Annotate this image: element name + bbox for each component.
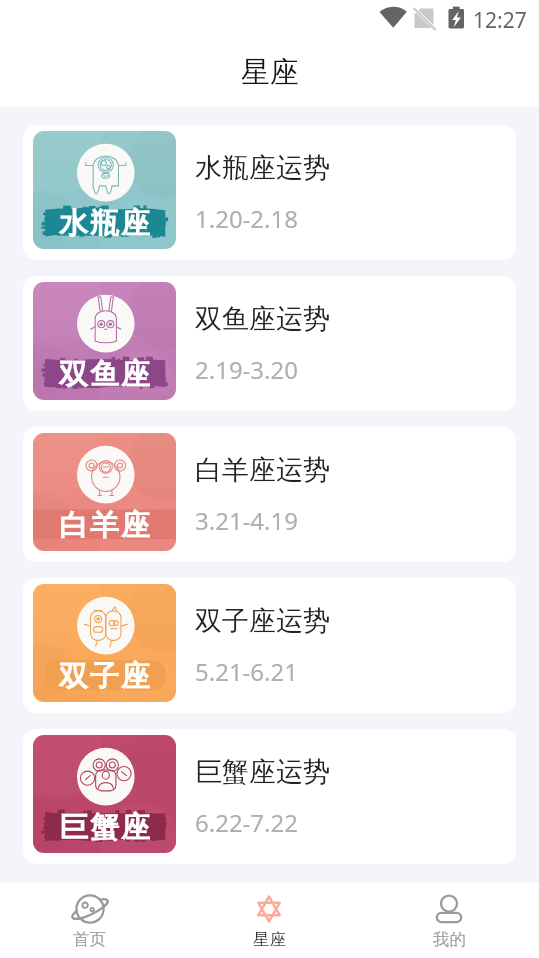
staticText: 12:27 — [473, 6, 527, 35]
staticText: 双鱼座运势 — [195, 302, 330, 336]
button[interactable]: Horoscope — [179, 881, 359, 958]
staticText: 5.21-6.21 — [195, 655, 298, 688]
staticText: 我的 — [433, 929, 466, 950]
button[interactable]: 双鱼座 — [23, 276, 516, 411]
staticText: 首页 — [73, 929, 106, 950]
staticText: 巨蟹座运势 — [195, 755, 330, 789]
button[interactable]: 白羊座 — [23, 427, 516, 562]
staticText: 白羊座 — [34, 507, 176, 544]
staticText: 水瓶座运势 — [195, 151, 330, 185]
staticText: 星座 — [253, 929, 286, 950]
staticText: 白羊座运势 — [195, 453, 330, 487]
staticText: 双子座 — [34, 658, 176, 695]
staticText: 巨蟹座 — [34, 809, 176, 846]
button[interactable]: 双子座 — [23, 578, 516, 713]
staticText: 6.22-7.22 — [195, 806, 298, 839]
staticText: 水瓶座 — [34, 205, 176, 242]
staticText: 1.20-2.18 — [195, 202, 298, 235]
staticText: 星座 — [241, 54, 299, 91]
button[interactable]: 水瓶座 — [23, 125, 516, 260]
staticText: 双鱼座 — [34, 356, 176, 393]
staticText: 双子座运势 — [195, 604, 330, 638]
button[interactable]: Profile — [359, 881, 539, 958]
staticText: 3.21-4.19 — [195, 504, 298, 537]
staticText: 2.19-3.20 — [195, 353, 298, 386]
button[interactable]: 巨蟹座 — [23, 729, 516, 864]
button[interactable]: Home — [0, 881, 179, 958]
